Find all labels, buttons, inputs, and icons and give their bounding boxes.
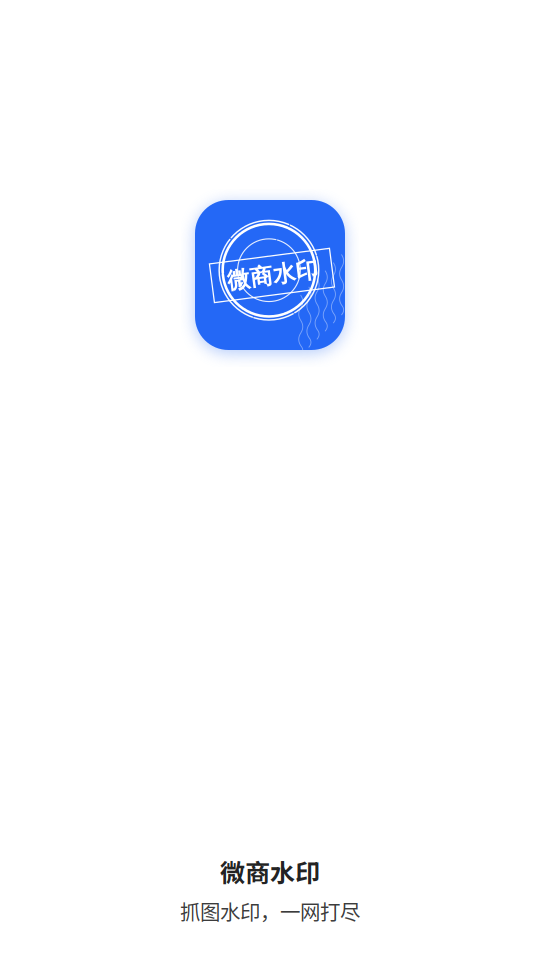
- staticText: 微商水印: [227, 261, 319, 289]
- staticText: 抓图水印，一网打尽: [180, 896, 360, 926]
- staticText: 微商水印: [220, 853, 320, 889]
